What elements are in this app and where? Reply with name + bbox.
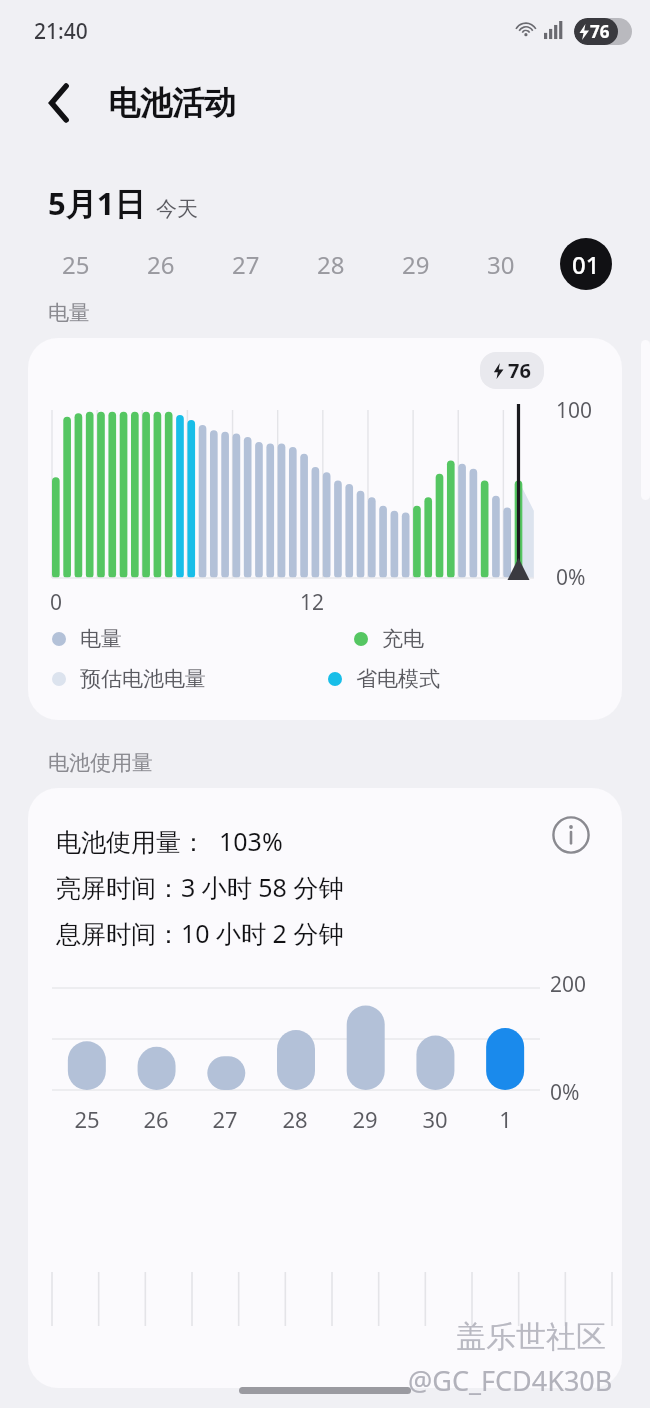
staticText: 26 — [143, 1104, 169, 1134]
staticText: 12 — [300, 588, 325, 617]
staticText: 5月1日 — [48, 182, 146, 224]
staticText: 76 — [508, 357, 531, 384]
staticText: 25 — [62, 248, 90, 281]
button[interactable]: 30 — [475, 238, 527, 290]
staticText: 0 — [50, 588, 63, 617]
staticText: 27 — [232, 248, 260, 281]
staticText: 息屏时间：10 小时 2 分钟 — [56, 916, 344, 950]
staticText: 省电模式 — [356, 666, 440, 692]
staticText: 电池使用量： 103% — [56, 824, 283, 858]
button[interactable]: 25 — [50, 238, 102, 290]
staticText: 电量 — [48, 300, 90, 326]
staticText: 21:40 — [34, 17, 88, 46]
button[interactable]: 电池使用量： 103% — [28, 788, 622, 1388]
staticText: 28 — [317, 248, 345, 281]
staticText: 30 — [422, 1104, 448, 1134]
staticText: 预估电池电量 — [80, 666, 206, 692]
staticText: 200 — [550, 970, 587, 999]
staticText: 亮屏时间：3 小时 58 分钟 — [56, 870, 344, 904]
button[interactable]: 28 — [305, 238, 357, 290]
button[interactable]: Info — [546, 810, 596, 860]
button[interactable]: 01 — [560, 238, 612, 290]
button[interactable]: 29 — [390, 238, 442, 290]
staticText: 01 — [572, 248, 600, 281]
button[interactable]: 27 — [220, 238, 272, 290]
button[interactable]: 26 — [135, 238, 187, 290]
staticText: 30 — [487, 248, 515, 281]
staticText: 28 — [282, 1104, 308, 1134]
button[interactable]: Back — [34, 77, 86, 129]
staticText: 电池使用量 — [48, 750, 153, 776]
staticText: 100 — [556, 396, 593, 425]
staticText: 充电 — [382, 626, 424, 652]
staticText: 76 — [590, 20, 610, 43]
staticText: 电池活动 — [108, 83, 236, 123]
staticText: @GC_FCD4K30B — [408, 1362, 613, 1399]
staticText: 盖乐世社区 — [456, 1318, 606, 1356]
staticText: 26 — [147, 248, 175, 281]
staticText: 电量 — [80, 626, 122, 652]
staticText: 25 — [74, 1104, 100, 1134]
button[interactable]: 76 — [28, 338, 622, 720]
staticText: 27 — [212, 1104, 238, 1134]
staticText: 0% — [556, 563, 586, 592]
staticText: 0% — [550, 1078, 580, 1107]
staticText: 29 — [352, 1104, 378, 1134]
staticText: 29 — [402, 248, 430, 281]
staticText: 1 — [499, 1104, 512, 1134]
staticText: 今天 — [156, 196, 198, 222]
